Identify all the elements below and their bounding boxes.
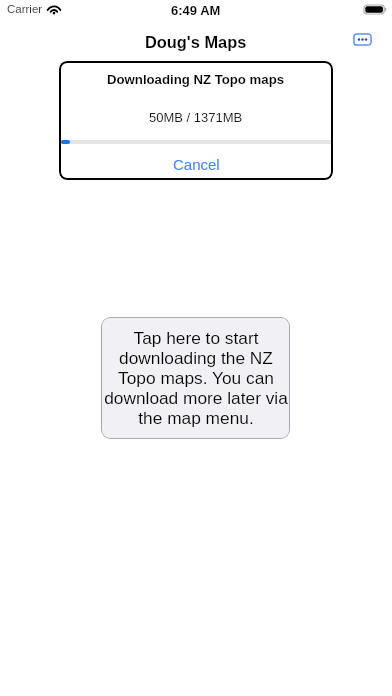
staticText: 6:49 AM	[171, 3, 221, 18]
staticText: 50MB / 1371MB	[149, 110, 243, 125]
staticText: Doug's Maps	[145, 33, 247, 51]
staticText: Carrier	[7, 3, 43, 16]
staticText: Tap here to start downloading the NZ Top…	[104, 328, 288, 428]
button[interactable]: More options	[353, 33, 372, 46]
button[interactable]: Tap here to start downloading the NZ Top…	[101, 317, 290, 439]
button[interactable]: Cancel	[59, 151, 333, 178]
staticText: Downloading NZ Topo maps	[107, 72, 285, 87]
staticText: Cancel	[173, 156, 220, 173]
